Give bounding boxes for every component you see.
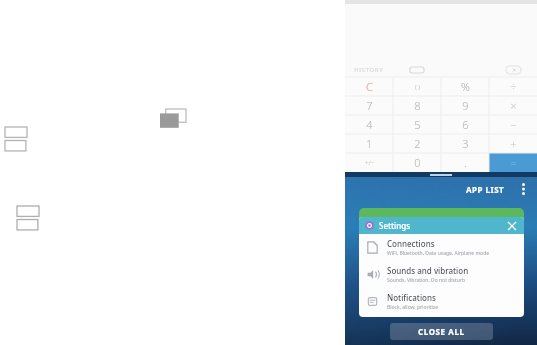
staticText: 3 [462,136,469,151]
button[interactable]: Backspace [489,63,537,77]
staticText: ÷ [510,79,517,94]
button[interactable]: 6 [441,115,489,134]
button[interactable]: +/− [345,153,393,172]
button[interactable]: 3 [441,134,489,153]
button[interactable]: CLOSE ALL [390,323,493,340]
staticText: 5 [414,117,421,132]
button[interactable]: C [345,77,393,96]
staticText: + [510,136,517,151]
button[interactable]: Expand keypad [393,63,441,77]
other: Settings app icon [365,221,374,230]
staticText: ( ) [415,83,420,91]
button[interactable]: 5 [393,115,441,134]
staticText: Sounds, Vibration, Do not disturb [387,277,466,284]
staticText: APP LIST [466,184,505,195]
staticText: − [510,117,517,132]
button[interactable]: HISTORY [345,63,393,77]
staticText: . [464,155,467,170]
staticText: 7 [366,98,373,113]
button[interactable]: Connections [359,234,524,261]
button[interactable]: − [489,115,537,134]
staticText: CLOSE ALL [418,326,465,337]
staticText: HISTORY [354,66,384,74]
button[interactable]: More options [515,181,531,197]
staticText: Connections [387,238,435,249]
staticText: Sounds and vibration [387,265,469,276]
button[interactable]: ÷ [489,77,537,96]
staticText: 0 [414,155,421,170]
button[interactable]: 1 [345,134,393,153]
staticText: C [366,79,373,94]
button[interactable]: Notifications [359,288,524,315]
button[interactable]: ( ) [393,77,441,96]
staticText: WiFi, Bluetooth, Data usage, Airplane mo… [387,250,490,257]
button[interactable]: APP LIST [462,182,509,197]
staticText: Notifications [387,292,436,303]
button[interactable]: 0 [393,153,441,172]
staticText: 6 [462,117,469,132]
staticText: 9 [462,98,469,113]
button[interactable]: 8 [393,96,441,115]
staticText: 8 [414,98,421,113]
staticText: 4 [366,117,373,132]
button[interactable]: 7 [345,96,393,115]
button[interactable]: × [489,96,537,115]
staticText: = [510,155,517,170]
button[interactable]: 2 [393,134,441,153]
staticText: % [461,79,470,94]
button[interactable] [359,208,524,230]
button[interactable]: % [441,77,489,96]
button[interactable]: = [489,153,537,172]
button[interactable]: 9 [441,96,489,115]
staticText: Settings [379,220,411,231]
staticText: × [510,98,517,113]
staticText: +/− [365,159,374,167]
button[interactable]: Sounds and vibration [359,261,524,288]
staticText: 1 [366,136,373,151]
staticText: Block, allow, prioritize [387,304,439,311]
button[interactable]: 4 [345,115,393,134]
button[interactable]: Close Settings [505,219,518,232]
button[interactable]: + [489,134,537,153]
staticText: 2 [414,136,421,151]
